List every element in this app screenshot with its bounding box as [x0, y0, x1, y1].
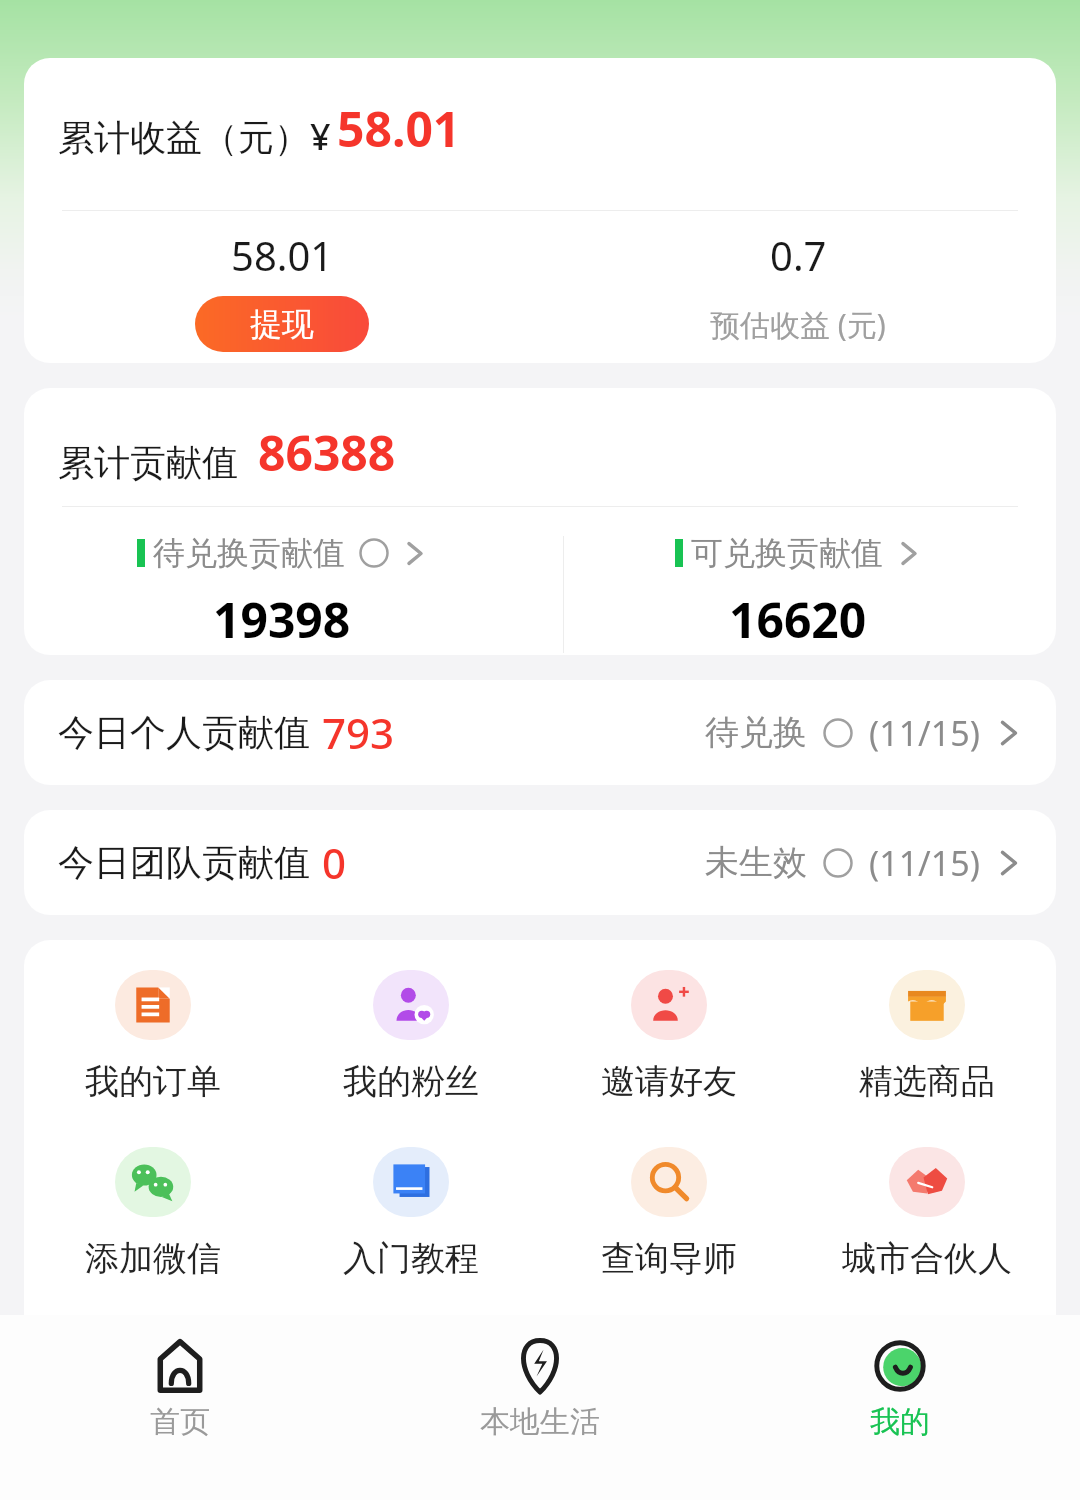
- staticText: 预估收益 (元): [710, 304, 886, 345]
- button[interactable]: 本地生活: [360, 1337, 720, 1441]
- staticText: 添加微信: [85, 1237, 221, 1280]
- button[interactable]: 今日团队贡献值: [24, 810, 1056, 915]
- staticText: (11/15): [869, 710, 980, 756]
- staticText: 19398: [213, 587, 351, 652]
- button[interactable]: 今日个人贡献值: [24, 680, 1056, 785]
- staticText: 精选商品: [859, 1060, 995, 1103]
- staticText: 86388: [258, 420, 396, 485]
- other: 精选商品: [889, 970, 965, 1040]
- button[interactable]: 提现: [195, 296, 369, 352]
- staticText: 本地生活: [480, 1403, 600, 1441]
- other: 查询导师: [631, 1147, 707, 1217]
- staticText: 首页: [150, 1403, 210, 1441]
- button[interactable]: 我的粉丝: [282, 970, 540, 1103]
- other: 我的订单: [115, 970, 191, 1040]
- staticText: 查询导师: [601, 1237, 737, 1280]
- staticText: 待兑换: [705, 711, 807, 754]
- other: 添加微信: [115, 1147, 191, 1217]
- button[interactable]: 入门教程: [282, 1147, 540, 1280]
- button[interactable]: 我的: [720, 1337, 1080, 1441]
- other: 本地生活: [511, 1337, 569, 1395]
- staticText: (11/15): [869, 840, 980, 886]
- other: 帮助: [359, 538, 389, 568]
- other: 我的粉丝: [373, 970, 449, 1040]
- staticText: 可兑换贡献值: [691, 533, 883, 573]
- button[interactable]: 邀请好友: [540, 970, 798, 1103]
- staticText: 0.7: [770, 228, 827, 282]
- button[interactable]: 待兑换贡献值: [24, 533, 540, 652]
- staticText: 提现: [250, 304, 314, 344]
- staticText: 58.01: [337, 96, 461, 161]
- staticText: 58.01: [231, 228, 334, 282]
- other: 帮助: [823, 718, 853, 748]
- other: 邀请好友: [631, 970, 707, 1040]
- staticText: 0: [322, 834, 347, 891]
- other: 首页: [151, 1337, 209, 1395]
- staticText: 今日团队贡献值: [58, 840, 310, 885]
- staticText: 入门教程: [343, 1237, 479, 1280]
- staticText: 我的: [870, 1403, 930, 1441]
- staticText: 我的粉丝: [343, 1060, 479, 1103]
- staticText: 邀请好友: [601, 1060, 737, 1103]
- other: 城市合伙人: [889, 1147, 965, 1217]
- staticText: 793: [322, 704, 395, 761]
- other: 帮助: [823, 848, 853, 878]
- button[interactable]: 首页: [0, 1337, 360, 1441]
- button[interactable]: 查询导师: [540, 1147, 798, 1280]
- staticText: 我的订单: [85, 1060, 221, 1103]
- button[interactable]: 添加微信: [24, 1147, 282, 1280]
- button[interactable]: 可兑换贡献值: [540, 533, 1056, 652]
- staticText: 累计贡献值: [58, 440, 238, 485]
- staticText: 累计收益（元）¥: [58, 112, 331, 161]
- other: 我的: [871, 1337, 929, 1395]
- button[interactable]: 我的订单: [24, 970, 282, 1103]
- button[interactable]: 城市合伙人: [798, 1147, 1056, 1280]
- staticText: 16620: [729, 587, 867, 652]
- staticText: 今日个人贡献值: [58, 710, 310, 755]
- other: 入门教程: [373, 1147, 449, 1217]
- staticText: 未生效: [705, 841, 807, 884]
- button[interactable]: 精选商品: [798, 970, 1056, 1103]
- staticText: 城市合伙人: [842, 1237, 1012, 1280]
- staticText: 待兑换贡献值: [153, 533, 345, 573]
